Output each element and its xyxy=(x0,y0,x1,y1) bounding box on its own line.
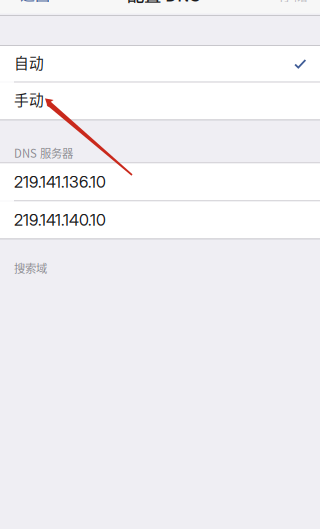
button[interactable]: 219.141.136.10 xyxy=(0,163,320,200)
button[interactable]: 返回 xyxy=(0,0,50,5)
staticText: 219.141.136.10 xyxy=(14,172,106,192)
button[interactable]: 自动 xyxy=(0,46,320,82)
button[interactable]: 219.141.140.10 xyxy=(0,201,320,238)
staticText: 配置 DNS xyxy=(127,0,201,7)
staticText: 返回 xyxy=(20,0,50,5)
button[interactable]: 手动 xyxy=(0,83,320,119)
staticText: 自动 xyxy=(14,52,44,73)
staticText: DNS 服务器 xyxy=(14,145,73,161)
staticText: 手动 xyxy=(14,88,44,110)
button[interactable]: 存储 xyxy=(278,0,320,5)
staticText: 存储 xyxy=(278,0,308,5)
staticText: 219.141.140.10 xyxy=(14,210,106,230)
staticText: 搜索域 xyxy=(14,260,47,276)
